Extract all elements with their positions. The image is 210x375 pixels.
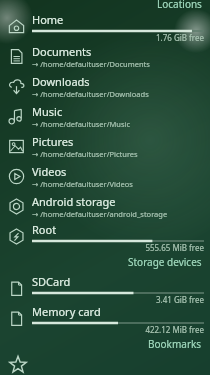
staticText: → /home/defaultuser/Downloads bbox=[32, 89, 149, 99]
staticText: Bookmarks bbox=[148, 337, 202, 351]
button[interactable]: Documents bbox=[0, 41, 210, 71]
staticText: SDCard bbox=[32, 274, 71, 289]
staticText: → /home/defaultuser/Documents bbox=[32, 59, 150, 69]
staticText: Home bbox=[32, 12, 64, 27]
staticText: → /home/defaultuser/android_storage bbox=[32, 209, 168, 219]
staticText: Android storage bbox=[32, 194, 116, 209]
staticText: Videos bbox=[32, 164, 67, 179]
staticText: → /home/defaultuser/Pictures bbox=[32, 149, 138, 159]
button[interactable]: Pictures bbox=[0, 131, 210, 161]
staticText: 1.76 GiB free bbox=[155, 32, 204, 43]
staticText: Locations bbox=[157, 0, 202, 8]
button[interactable]: SDCard bbox=[0, 273, 210, 303]
staticText: Root bbox=[32, 222, 57, 237]
staticText: → /home/defaultuser/Videos bbox=[32, 179, 133, 189]
button[interactable]: Videos bbox=[0, 161, 210, 191]
button[interactable]: Bookmarks bbox=[0, 355, 210, 375]
staticText: Downloads bbox=[32, 74, 90, 89]
button[interactable]: Android storage bbox=[0, 191, 210, 221]
staticText: → /home/defaultuser/Music bbox=[32, 119, 131, 129]
staticText: Memory card bbox=[32, 304, 101, 319]
button[interactable]: Downloads bbox=[0, 71, 210, 101]
staticText: Music bbox=[32, 104, 63, 119]
staticText: 422.12 MiB free bbox=[145, 324, 204, 335]
button[interactable]: Memory card bbox=[0, 303, 210, 333]
staticText: Storage devices bbox=[128, 255, 202, 269]
staticText: 555.65 MiB free bbox=[145, 242, 204, 253]
staticText: Documents bbox=[32, 44, 92, 59]
staticText: 3.41 GiB free bbox=[155, 294, 204, 305]
staticText: Pictures bbox=[32, 134, 74, 149]
button[interactable]: Home bbox=[0, 11, 210, 41]
button[interactable]: Root bbox=[0, 221, 210, 251]
button[interactable]: Music bbox=[0, 101, 210, 131]
